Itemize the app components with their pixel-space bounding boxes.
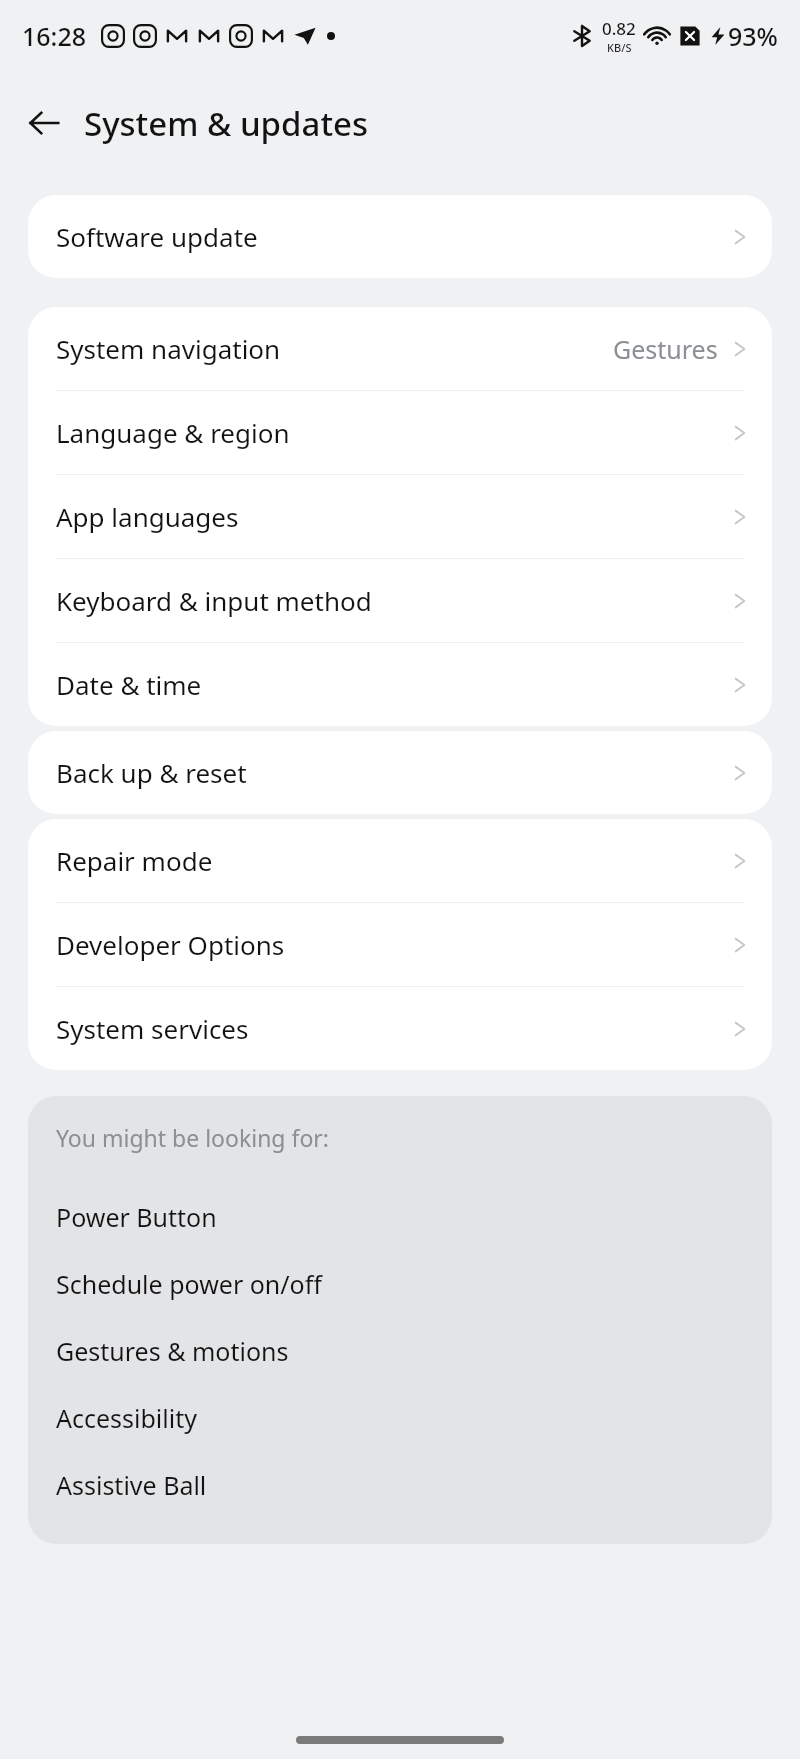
staticText: 0.82 (602, 17, 636, 40)
staticText: Schedule power on/off (56, 1267, 322, 1301)
button[interactable]: Keyboard & input method (28, 559, 772, 642)
staticText: Gestures (613, 332, 718, 366)
button[interactable]: Gestures & motions (28, 1317, 772, 1384)
staticText: Date & time (56, 667, 202, 702)
staticText: System services (56, 1011, 249, 1046)
staticText: System & updates (84, 101, 369, 146)
staticText: Repair mode (56, 843, 213, 878)
staticText: Developer Options (56, 927, 285, 962)
staticText: Language & region (56, 415, 290, 450)
button[interactable]: Power Button (28, 1183, 772, 1250)
staticText: System navigation (56, 331, 281, 366)
button[interactable]: System services (28, 987, 772, 1070)
staticText: Accessibility (56, 1401, 197, 1435)
staticText: App languages (56, 499, 239, 534)
staticText: You might be looking for: (56, 1122, 329, 1153)
button[interactable]: App languages (28, 475, 772, 558)
button[interactable]: Back (16, 95, 72, 151)
staticText: 93% (728, 19, 778, 53)
button[interactable]: System navigation (28, 307, 772, 390)
button[interactable]: Schedule power on/off (28, 1250, 772, 1317)
button[interactable]: Assistive Ball (28, 1451, 772, 1518)
staticText: 16:28 (22, 19, 87, 53)
staticText: Power Button (56, 1200, 217, 1234)
staticText: Assistive Ball (56, 1468, 207, 1502)
staticText: KB/S (607, 40, 632, 55)
button[interactable]: Accessibility (28, 1384, 772, 1451)
button[interactable]: Date & time (28, 643, 772, 726)
button[interactable]: Software update (28, 195, 772, 278)
button[interactable]: Developer Options (28, 903, 772, 986)
staticText: Keyboard & input method (56, 583, 372, 618)
staticText: Gestures & motions (56, 1334, 289, 1368)
button[interactable]: Language & region (28, 391, 772, 474)
staticText: Back up & reset (56, 755, 247, 790)
button[interactable]: Back up & reset (28, 731, 772, 814)
staticText: Software update (56, 219, 258, 254)
button[interactable]: Repair mode (28, 819, 772, 902)
